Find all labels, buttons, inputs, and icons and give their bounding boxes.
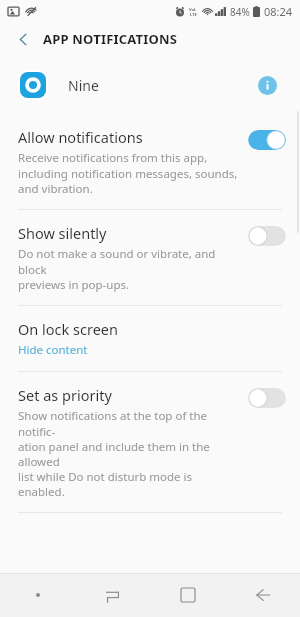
staticText: 84% — [230, 5, 250, 19]
button[interactable]: On — [248, 130, 286, 150]
staticText: Receive notifications from this app, inc… — [18, 150, 238, 196]
button[interactable]: Set as priority — [0, 372, 300, 512]
button[interactable]: Show silently — [0, 210, 300, 305]
staticText: 08:24 — [264, 4, 293, 19]
staticText: Hide content — [18, 342, 88, 358]
staticText: VoL — [189, 7, 197, 12]
staticText: Nine — [68, 76, 99, 95]
button[interactable]: Allow notifications — [0, 114, 300, 209]
staticText: APP NOTIFICATIONS — [43, 30, 178, 48]
button[interactable]: Off — [248, 226, 286, 246]
staticText: LTE — [190, 12, 197, 17]
button[interactable]: Recents — [75, 573, 150, 617]
button[interactable]: On lock screen — [0, 306, 300, 371]
staticText: Show notifications at the top of the not… — [18, 408, 240, 499]
staticText: Set as priority — [18, 385, 112, 405]
button[interactable]: Off — [248, 388, 286, 408]
staticText: On lock screen — [18, 319, 118, 339]
button[interactable]: Home — [150, 573, 225, 617]
staticText: Allow notifications — [18, 127, 143, 147]
button[interactable]: Back — [8, 24, 38, 54]
staticText: Show silently — [18, 223, 107, 243]
button[interactable]: App info — [252, 70, 282, 100]
button[interactable]: Menu indicator — [0, 573, 75, 617]
button[interactable]: Back — [225, 573, 300, 617]
button[interactable]: Nine — [0, 56, 300, 114]
staticText: Do not make a sound or vibrate, and bloc… — [18, 246, 240, 292]
